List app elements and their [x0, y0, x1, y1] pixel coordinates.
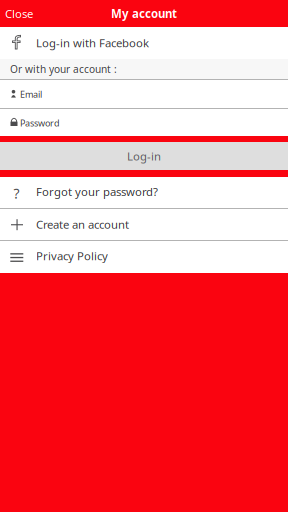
staticText: Password	[20, 117, 60, 129]
button[interactable]: Create an account	[0, 209, 288, 240]
staticText: Or with your account :	[10, 62, 117, 76]
button[interactable]: Privacy Policy	[0, 241, 288, 273]
staticText: Email	[20, 88, 42, 100]
button[interactable]: Close	[0, 0, 41, 27]
staticText: Forgot your password?	[36, 184, 158, 199]
button[interactable]: Log-in	[0, 142, 288, 170]
button[interactable]: Password	[0, 109, 288, 136]
staticText: Log-in	[127, 148, 161, 164]
button[interactable]: Email	[0, 80, 288, 108]
button[interactable]: Log-in with Facebook	[0, 27, 288, 59]
staticText: Privacy Policy	[36, 248, 108, 264]
staticText: Log-in with Facebook	[36, 35, 149, 51]
button[interactable]: ?	[0, 177, 288, 208]
staticText: My account	[111, 6, 177, 21]
staticText: ?	[13, 184, 19, 203]
staticText: Create an account	[36, 217, 129, 232]
staticText: Close	[5, 6, 33, 21]
